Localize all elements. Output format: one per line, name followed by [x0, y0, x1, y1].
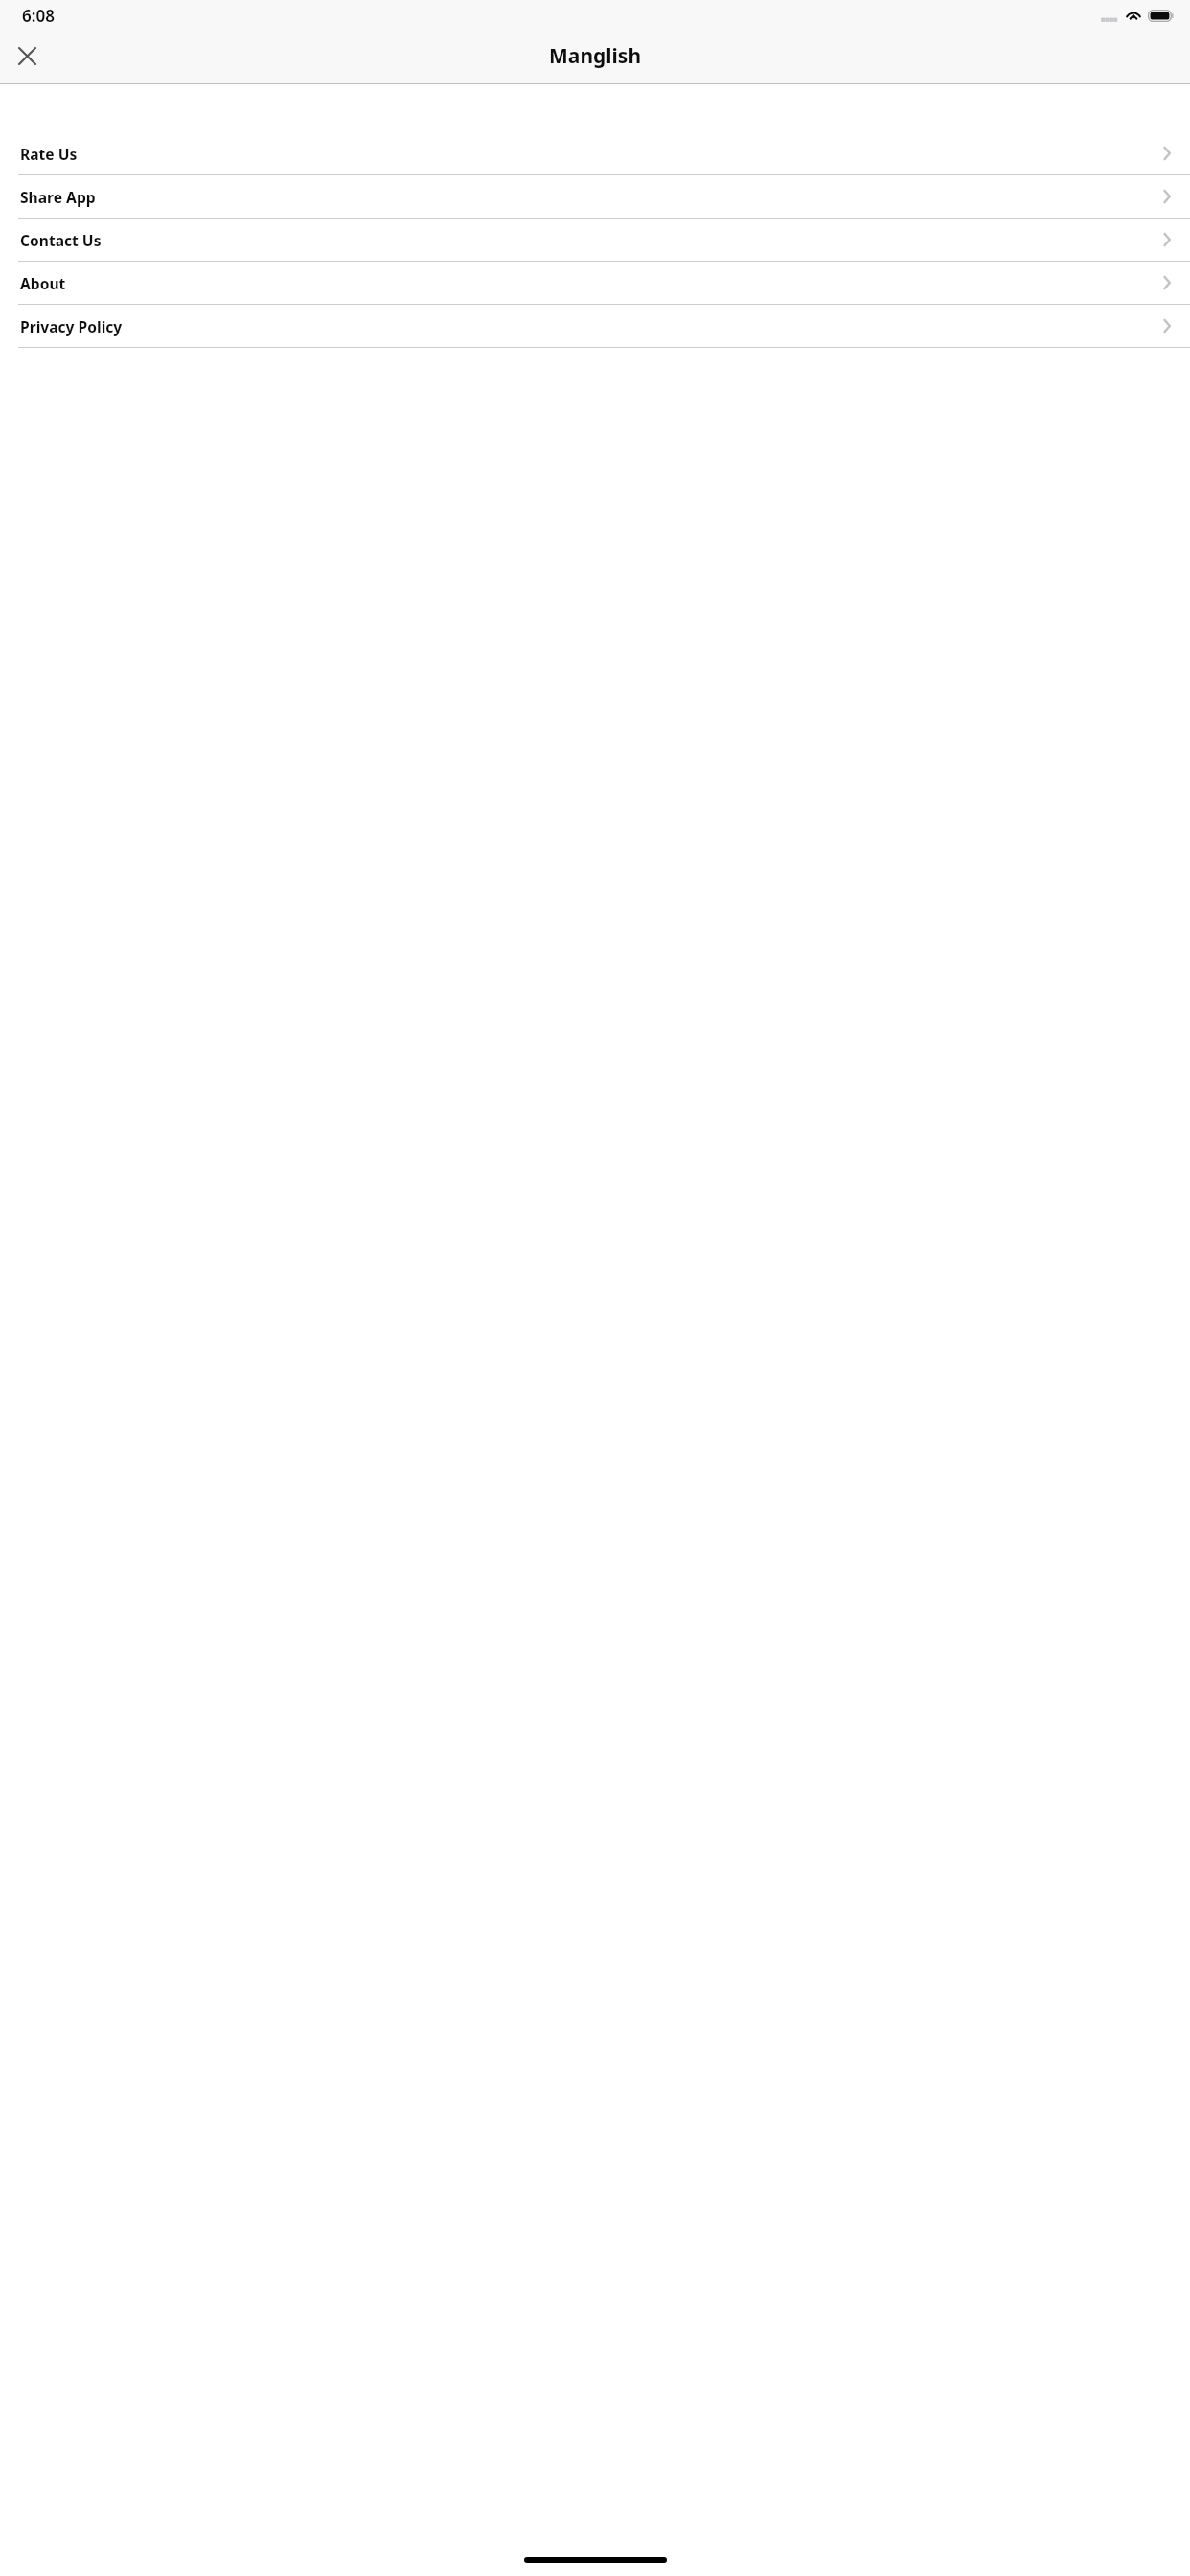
staticText: 6:08 [22, 5, 55, 27]
staticText: Share App [20, 187, 96, 207]
button[interactable]: About [0, 262, 1190, 305]
staticText: Contact Us [20, 230, 102, 250]
staticText: Manglish [549, 42, 642, 70]
staticText: Rate Us [20, 144, 78, 164]
button[interactable]: Rate Us [0, 132, 1190, 175]
button[interactable]: Close [9, 37, 46, 75]
button[interactable]: Privacy Policy [0, 305, 1190, 348]
staticText: About [20, 273, 66, 293]
button[interactable]: Share App [0, 175, 1190, 218]
button[interactable]: Contact Us [0, 218, 1190, 262]
staticText: Privacy Policy [20, 316, 123, 336]
